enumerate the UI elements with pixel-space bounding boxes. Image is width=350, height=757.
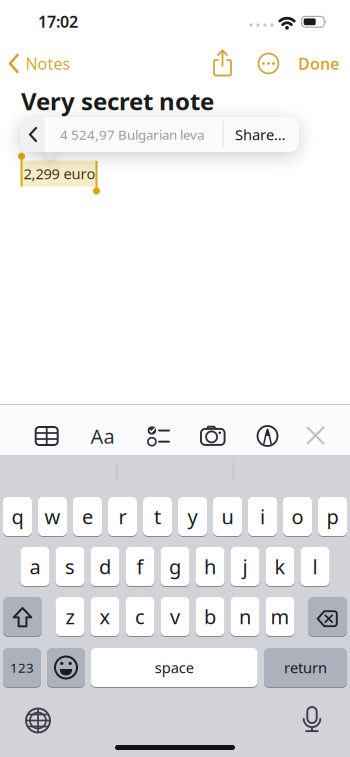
button[interactable]: f	[125, 547, 154, 587]
staticText: j	[242, 553, 247, 580]
staticText: w	[44, 503, 60, 530]
button[interactable]: Insert photo	[200, 425, 226, 446]
staticText: r	[118, 503, 126, 530]
staticText: a	[29, 553, 40, 580]
staticText: 2,299 euro	[23, 164, 95, 183]
button[interactable]: space	[91, 648, 257, 688]
staticText: l	[312, 553, 317, 580]
button[interactable]: Done	[298, 46, 339, 80]
button[interactable]: w	[38, 497, 67, 537]
staticText: c	[135, 603, 145, 630]
staticText: i	[260, 503, 265, 530]
button[interactable]: y	[178, 497, 207, 537]
staticText: y	[187, 503, 197, 530]
button[interactable]: d	[90, 547, 119, 587]
button[interactable]: Checklist	[145, 426, 169, 446]
button[interactable]: g	[160, 547, 189, 587]
button[interactable]: 123	[3, 648, 41, 688]
button[interactable]: Previous actions	[20, 122, 45, 147]
button[interactable]: Dictate	[303, 706, 321, 733]
staticText: Very secret note	[21, 85, 214, 117]
button[interactable]: t	[143, 497, 172, 537]
button[interactable]: u	[213, 497, 242, 537]
button[interactable]: Share	[209, 48, 235, 78]
button[interactable]: l	[300, 547, 329, 587]
staticText: space	[155, 658, 194, 677]
button[interactable]: z	[55, 597, 84, 637]
button[interactable]: q	[3, 497, 32, 537]
button[interactable]: c	[125, 597, 154, 637]
staticText: Aa	[90, 423, 114, 449]
staticText: p	[326, 503, 338, 530]
button[interactable]: h	[195, 547, 224, 587]
button[interactable]: m	[265, 597, 294, 637]
button[interactable]: Emoji	[47, 648, 85, 688]
button[interactable]: Next keyboard	[25, 707, 51, 733]
staticText: o	[291, 503, 303, 530]
staticText: d	[99, 553, 111, 580]
staticText: Notes	[25, 53, 70, 74]
button[interactable]: o	[283, 497, 312, 537]
button[interactable]: j	[230, 547, 259, 587]
staticText: return	[284, 658, 327, 677]
button[interactable]: Markup	[256, 425, 278, 447]
button[interactable]: n	[230, 597, 259, 637]
staticText: t	[154, 503, 161, 530]
staticText: f	[136, 553, 143, 580]
button[interactable]: v	[160, 597, 189, 637]
staticText: u	[221, 503, 233, 530]
staticText: n	[239, 603, 251, 630]
button[interactable]: e	[73, 497, 102, 537]
staticText: b	[204, 603, 216, 630]
staticText: q	[11, 503, 23, 530]
button[interactable]: More	[256, 51, 280, 75]
button[interactable]: Insert table	[35, 426, 59, 446]
staticText: 4 524,97 Bulgarian leva	[60, 126, 204, 143]
button[interactable]: x	[90, 597, 119, 637]
button[interactable]: r	[108, 497, 137, 537]
button[interactable]: Dismiss toolbar	[306, 426, 324, 444]
staticText: v	[170, 603, 180, 630]
staticText: e	[82, 503, 93, 530]
staticText: g	[169, 553, 181, 580]
button[interactable]: s	[55, 547, 84, 587]
staticText: Share…	[235, 125, 286, 144]
button[interactable]: Format	[85, 423, 119, 449]
button[interactable]: 4 524,97 Bulgarian leva	[43, 117, 221, 152]
button[interactable]: k	[265, 547, 294, 587]
button[interactable]: a	[20, 547, 49, 587]
button[interactable]: return	[264, 648, 347, 688]
staticText: z	[65, 603, 74, 630]
staticText: x	[99, 603, 110, 630]
button[interactable]: Share…	[223, 117, 297, 152]
staticText: h	[204, 553, 216, 580]
button[interactable]: Shift	[3, 597, 42, 637]
staticText: 123	[10, 659, 34, 676]
staticText: m	[270, 603, 289, 630]
button[interactable]: Notes	[7, 46, 70, 80]
staticText: Done	[298, 53, 339, 74]
button[interactable]: p	[318, 497, 347, 537]
button[interactable]: b	[195, 597, 224, 637]
button[interactable]: i	[248, 497, 277, 537]
staticText: s	[65, 553, 75, 580]
staticText: k	[274, 553, 285, 580]
staticText: 17:02	[38, 11, 78, 32]
button[interactable]: Delete	[308, 597, 347, 637]
